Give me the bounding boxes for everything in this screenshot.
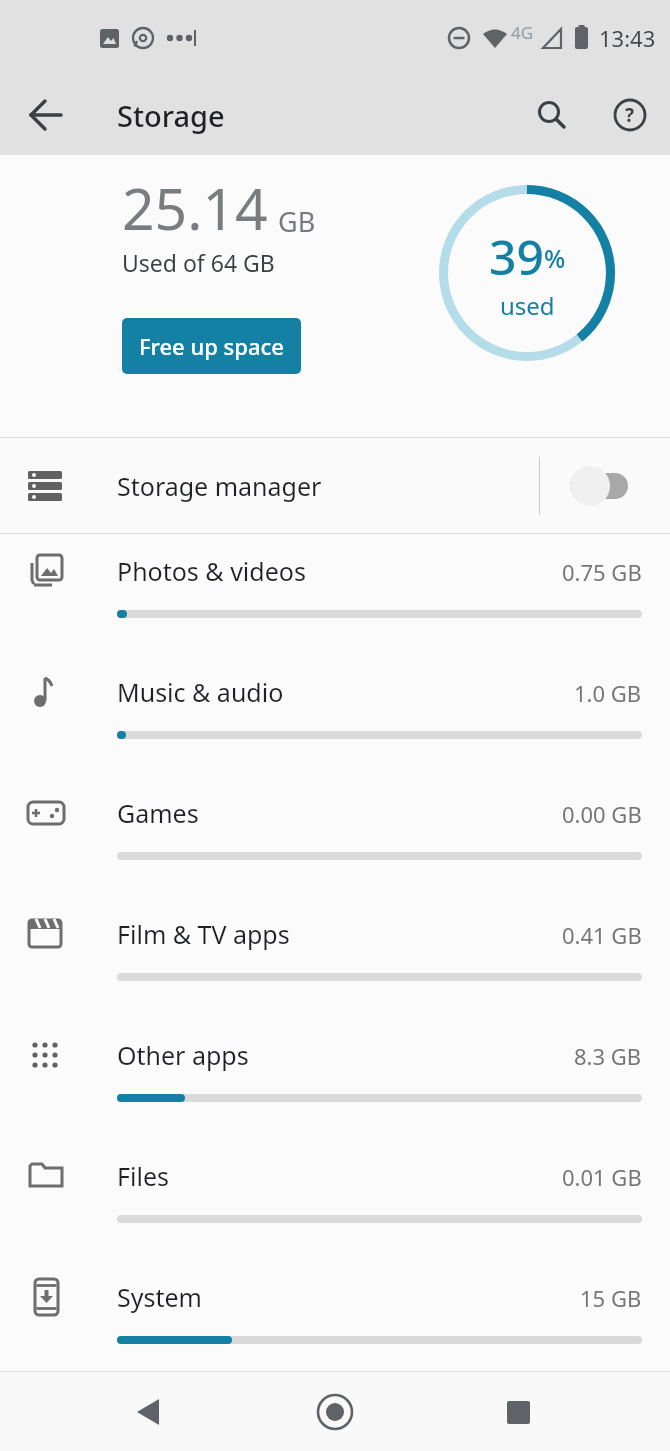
staticText: 15 GB: [580, 1283, 642, 1313]
button[interactable]: [570, 466, 628, 506]
staticText: Storage manager: [117, 469, 322, 503]
button[interactable]: Film & TV apps: [0, 897, 670, 1018]
staticText: 1.0 GB: [574, 678, 642, 708]
button[interactable]: [528, 91, 576, 139]
button[interactable]: [311, 1388, 359, 1436]
button[interactable]: Storage manager: [0, 438, 670, 533]
staticText: Free up space: [139, 331, 284, 361]
staticText: Games: [117, 796, 199, 830]
button[interactable]: Other apps: [0, 1018, 670, 1139]
staticText: Film & TV apps: [117, 917, 290, 951]
staticText: 0.00 GB: [562, 799, 642, 829]
staticText: GB: [278, 203, 316, 240]
button[interactable]: Music & audio: [0, 655, 670, 776]
button[interactable]: [22, 91, 70, 139]
button[interactable]: Games: [0, 776, 670, 897]
button[interactable]: System: [0, 1260, 670, 1381]
staticText: 0.41 GB: [562, 920, 642, 950]
button[interactable]: Photos & videos: [0, 534, 670, 655]
staticText: 8.3 GB: [574, 1041, 642, 1071]
staticText: 4G: [511, 21, 534, 44]
staticText: Music & audio: [117, 675, 284, 709]
button[interactable]: [124, 1388, 172, 1436]
staticText: 39: [489, 224, 544, 289]
staticText: 13:43: [599, 23, 656, 53]
button[interactable]: [494, 1388, 542, 1436]
staticText: Other apps: [117, 1038, 249, 1072]
staticText: System: [117, 1280, 202, 1314]
staticText: ?: [625, 102, 635, 128]
button[interactable]: ?: [606, 91, 654, 139]
staticText: 0.75 GB: [562, 557, 642, 587]
staticText: used: [500, 289, 555, 322]
staticText: 0.01 GB: [562, 1162, 642, 1192]
staticText: Used of 64 GB: [122, 247, 275, 278]
staticText: 25.14: [122, 169, 268, 247]
staticText: Photos & videos: [117, 554, 306, 588]
staticText: Storage: [117, 96, 225, 135]
button[interactable]: Free up space: [122, 318, 301, 374]
staticText: %: [544, 241, 566, 275]
staticText: Files: [117, 1159, 169, 1193]
button[interactable]: Files: [0, 1139, 670, 1260]
